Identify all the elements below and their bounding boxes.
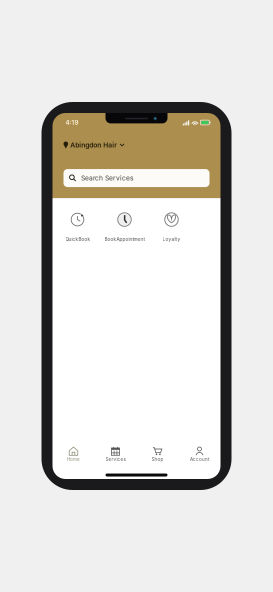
button[interactable]: Services	[94, 446, 136, 462]
button[interactable]: Book Appointment	[101, 211, 148, 243]
button[interactable]: Search Services	[63, 169, 209, 187]
button[interactable]: Home	[52, 446, 94, 462]
button[interactable]: Shop	[136, 446, 178, 462]
staticText: Loyalty	[162, 237, 180, 242]
staticText: Home	[67, 456, 80, 462]
staticText: Book Appointment	[104, 237, 144, 242]
staticText: Shop	[151, 456, 163, 462]
staticText: Quick Book	[65, 237, 89, 242]
staticText: Services	[105, 456, 125, 462]
button[interactable]: Abingdon Hair	[63, 140, 125, 150]
button[interactable]: Quick Book	[54, 211, 101, 243]
staticText: Search Services	[81, 174, 134, 182]
staticText: 4:19	[65, 119, 78, 126]
button[interactable]: Loyalty	[148, 211, 195, 243]
staticText: Abingdon Hair	[70, 141, 117, 149]
staticText: Account	[190, 456, 209, 462]
button[interactable]: Account	[178, 446, 220, 462]
